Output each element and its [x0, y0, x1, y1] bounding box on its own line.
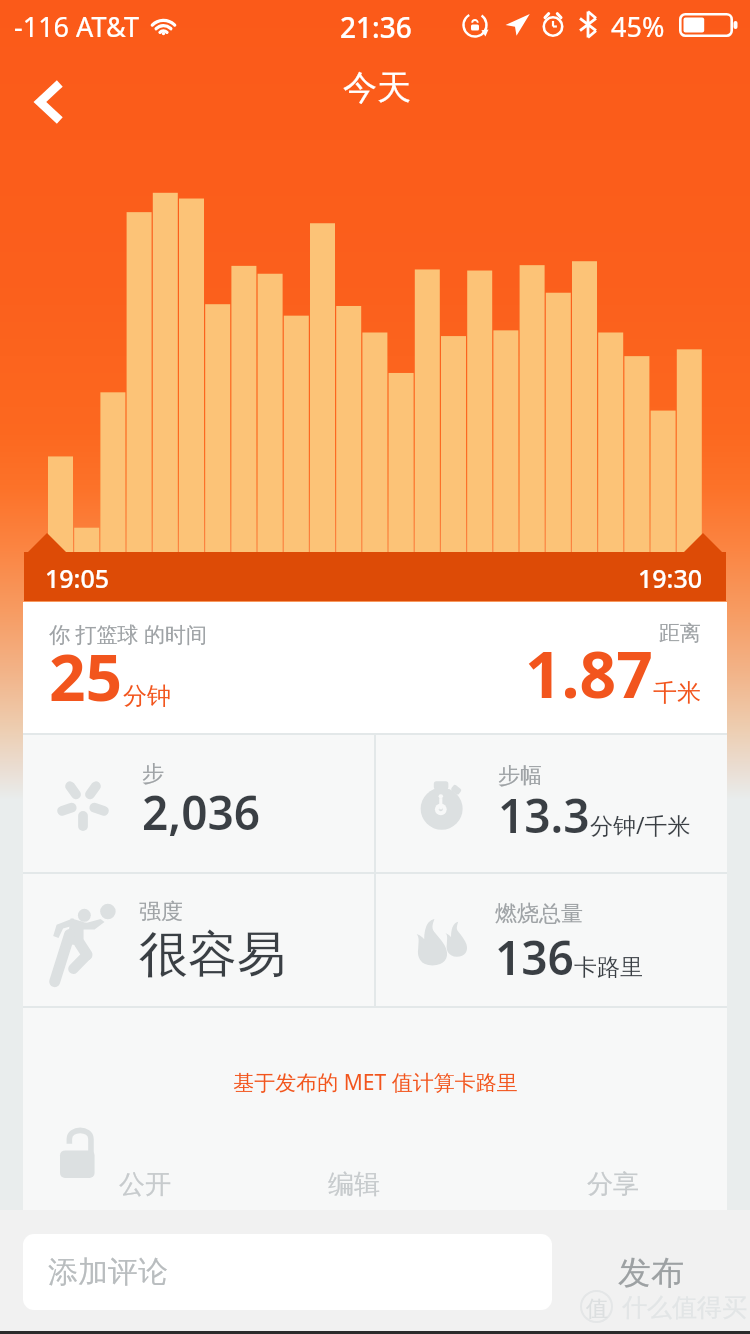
button[interactable]: 编辑: [283, 1160, 473, 1214]
staticText: 添加评论: [48, 1253, 168, 1291]
staticText: 136: [495, 926, 574, 989]
staticText: 13.3: [498, 784, 590, 847]
button[interactable]: 分享: [517, 1160, 727, 1214]
staticText: 步幅: [498, 762, 542, 790]
button[interactable]: 强度: [23, 874, 374, 1006]
staticText: 什么值得买: [622, 1292, 747, 1323]
staticText: 基于发布的 MET 值计算卡路里: [233, 1068, 518, 1097]
staticText: 19:30: [638, 561, 703, 595]
button[interactable]: 燃烧总量: [376, 874, 727, 1006]
button[interactable]: 步: [23, 735, 374, 872]
button[interactable]: 发布: [618, 1252, 684, 1294]
staticText: 卡路里: [574, 953, 643, 982]
staticText: 19:05: [45, 561, 110, 595]
staticText: 1.87: [525, 630, 653, 717]
staticText: 燃烧总量: [495, 900, 583, 928]
staticText: 分钟/千米: [590, 809, 691, 840]
staticText: 强度: [139, 898, 183, 926]
staticText: 分钟: [123, 681, 171, 711]
staticText: 今天: [343, 66, 411, 109]
button[interactable]: 公开: [36, 1160, 256, 1214]
staticText: 值: [586, 1295, 608, 1323]
staticText: 25: [49, 633, 123, 720]
staticText: -116 AT&T: [14, 8, 140, 45]
staticText: 步: [142, 760, 164, 788]
button[interactable]: 步幅: [376, 735, 727, 872]
staticText: 距离: [659, 620, 701, 646]
staticText: 你 打篮球 的时间: [49, 620, 207, 649]
button[interactable]: 添加评论: [23, 1234, 552, 1310]
button[interactable]: Back: [20, 74, 76, 130]
staticText: 分享: [587, 1168, 639, 1201]
staticText: 很容易: [139, 924, 286, 986]
staticText: 千米: [653, 678, 701, 708]
staticText: 编辑: [328, 1168, 380, 1201]
staticText: 公开: [119, 1168, 171, 1201]
staticText: 21:36: [340, 8, 412, 46]
staticText: 2,036: [142, 781, 261, 844]
staticText: 45%: [611, 8, 665, 45]
